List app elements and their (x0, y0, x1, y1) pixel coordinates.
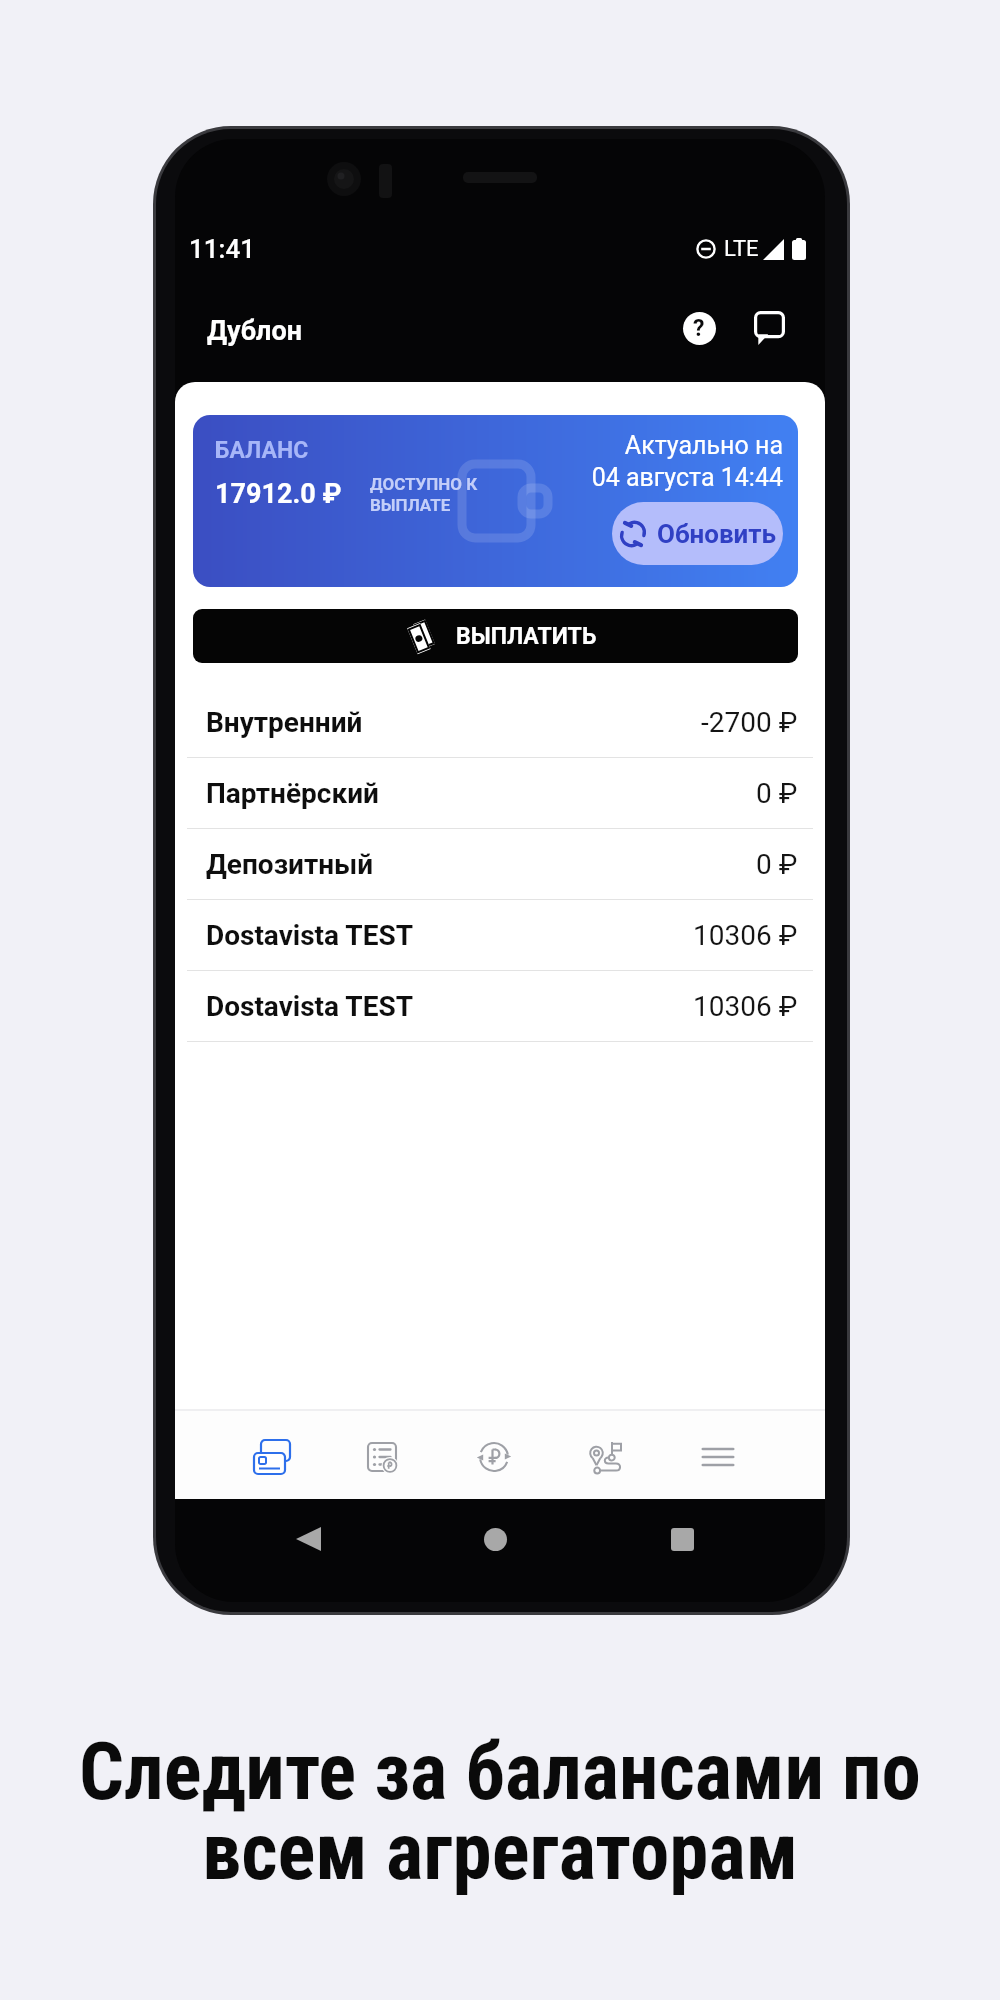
button[interactable]: Routes (556, 1411, 668, 1499)
staticText: Dostavista TEST (206, 919, 413, 952)
button[interactable]: Help (675, 304, 723, 352)
button[interactable]: Dostavista TEST (175, 900, 825, 970)
staticText: Внутренний (206, 706, 363, 739)
staticText: -2700 ₽ (701, 706, 798, 739)
staticText: Следите за балансами по всем агрегаторам (0, 1726, 1000, 1898)
button[interactable]: Chat (745, 304, 793, 352)
staticText: Партнёрский (206, 777, 379, 810)
button[interactable]: Back (274, 1511, 342, 1567)
button[interactable]: Menu (668, 1411, 780, 1499)
staticText: LTE (724, 236, 759, 262)
button[interactable]: Orders (332, 1411, 444, 1499)
button[interactable]: Партнёрский (175, 758, 825, 828)
button[interactable]: Recents (648, 1511, 716, 1567)
button[interactable]: Внутренний (175, 687, 825, 757)
button[interactable]: Dostavista TEST (175, 971, 825, 1041)
staticText: 0 ₽ (756, 777, 798, 810)
button[interactable]: Home (461, 1511, 529, 1567)
staticText: 10306 ₽ (693, 990, 798, 1023)
staticText: Дублон (207, 315, 302, 347)
staticText: Dostavista TEST (206, 990, 413, 1023)
button[interactable]: БАЛАНС (193, 415, 798, 587)
button[interactable]: Cards (220, 1411, 332, 1499)
button[interactable]: Transfers (444, 1411, 556, 1499)
staticText: БАЛАНС (215, 437, 309, 464)
button[interactable]: Обновить (612, 502, 783, 565)
staticText: 11:41 (189, 234, 255, 264)
staticText: Депозитный (206, 848, 374, 881)
staticText: 0 ₽ (756, 848, 798, 881)
staticText: 10306 ₽ (693, 919, 798, 952)
button[interactable]: Депозитный (175, 829, 825, 899)
staticText: Обновить (657, 519, 777, 549)
staticText: ДОСТУПНО К ВЫПЛАТЕ (370, 474, 478, 515)
staticText: 17912.0 ₽ (215, 478, 342, 510)
button[interactable]: ВЫПЛАТИТЬ (193, 609, 798, 663)
staticText: Актуально на 04 августа 14:44 (591, 431, 783, 492)
staticText: ВЫПЛАТИТЬ (456, 623, 597, 650)
staticText: ? (693, 315, 705, 342)
